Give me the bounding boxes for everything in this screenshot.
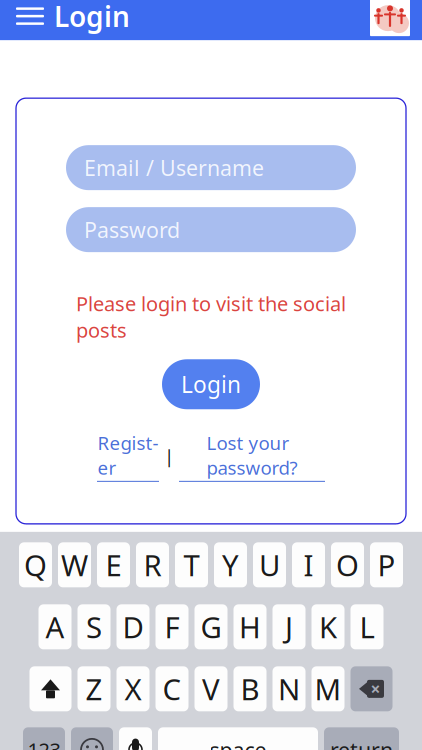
button[interactable]: G (194, 604, 227, 649)
staticText: Register (97, 430, 158, 480)
button[interactable]: Q (19, 542, 52, 587)
button[interactable]: Email / Username (66, 145, 356, 190)
button[interactable]: Register (97, 430, 159, 482)
button[interactable]: Shift (29, 666, 71, 711)
staticText: N (278, 669, 300, 708)
button[interactable]: I (292, 542, 325, 587)
staticText: × (370, 677, 380, 700)
button[interactable]: S (77, 604, 110, 649)
button[interactable]: U (253, 542, 286, 587)
staticText: Password (84, 215, 180, 244)
button[interactable]: E (97, 542, 130, 587)
staticText: A (45, 607, 64, 646)
button[interactable]: Z (77, 666, 110, 711)
button[interactable]: H (233, 604, 266, 649)
button[interactable]: return (324, 727, 399, 750)
button[interactable]: V (194, 666, 227, 711)
staticText: Login (181, 369, 241, 399)
button[interactable]: N (272, 666, 305, 711)
button[interactable]: Y (214, 542, 247, 587)
staticText: Lost your password? (206, 430, 297, 480)
staticText: D (122, 607, 143, 646)
button[interactable]: T (175, 542, 208, 587)
button[interactable]: M (311, 666, 344, 711)
staticText: M (314, 669, 341, 708)
button[interactable]: W (58, 542, 91, 587)
staticText: 123 (27, 737, 60, 750)
button[interactable]: L (350, 604, 383, 649)
button[interactable]: Lost your password? (179, 430, 325, 482)
button[interactable]: X (116, 666, 149, 711)
staticText: H (239, 607, 261, 646)
button[interactable]: Home (370, 0, 414, 36)
staticText: Q (24, 545, 47, 584)
staticText: O (336, 545, 359, 584)
staticText: return (330, 736, 393, 750)
button[interactable]: 123 (23, 727, 65, 750)
staticText: Z (85, 669, 102, 708)
button[interactable]: O (331, 542, 364, 587)
button[interactable]: K (311, 604, 344, 649)
button[interactable]: Login (162, 359, 260, 409)
staticText: Y (222, 545, 239, 584)
button[interactable]: R (136, 542, 169, 587)
staticText: X (124, 669, 141, 708)
staticText: Email / Username (84, 153, 264, 182)
button[interactable]: P (370, 542, 403, 587)
staticText: W (61, 545, 88, 584)
staticText: I (303, 545, 313, 584)
staticText: J (285, 607, 293, 646)
staticText: P (377, 545, 395, 584)
staticText: R (143, 545, 161, 584)
staticText: V (202, 669, 220, 708)
button[interactable]: C (155, 666, 188, 711)
button[interactable]: D (116, 604, 149, 649)
button[interactable]: B (233, 666, 266, 711)
button[interactable]: Menu (8, 0, 52, 38)
staticText: Please login to visit the social posts (76, 290, 346, 343)
button[interactable]: Emoji (71, 727, 113, 750)
button[interactable]: Password (66, 207, 356, 252)
button[interactable]: space (158, 727, 318, 750)
staticText: F (164, 607, 179, 646)
staticText: S (86, 607, 102, 646)
button[interactable]: Dictate (119, 727, 152, 750)
staticText: G (200, 607, 221, 646)
button[interactable]: F (155, 604, 188, 649)
staticText: C (162, 669, 181, 708)
button[interactable]: Delete (350, 666, 392, 711)
staticText: L (359, 607, 374, 646)
staticText: space (209, 736, 266, 750)
staticText: B (240, 669, 259, 708)
staticText: E (105, 545, 121, 584)
staticText: Login (54, 0, 130, 35)
staticText: T (183, 545, 199, 584)
staticText: | (159, 444, 179, 468)
staticText: U (259, 545, 280, 584)
button[interactable]: A (38, 604, 71, 649)
staticText: K (319, 607, 337, 646)
button[interactable]: J (272, 604, 305, 649)
